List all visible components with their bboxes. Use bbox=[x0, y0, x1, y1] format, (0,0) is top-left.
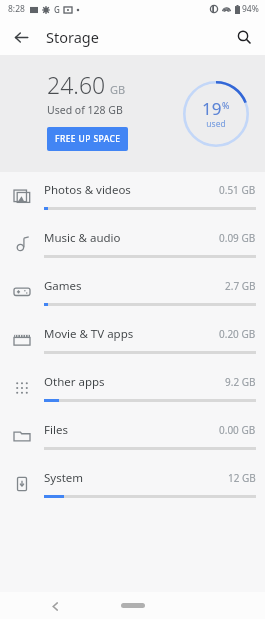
staticText: 12 GB bbox=[228, 471, 256, 485]
button[interactable]: Back bbox=[6, 22, 36, 52]
staticText: used bbox=[206, 118, 226, 130]
staticText: System bbox=[44, 470, 228, 486]
staticText: Movie & TV apps bbox=[44, 326, 219, 342]
staticText: 19 bbox=[202, 97, 222, 120]
button[interactable]: Home bbox=[116, 600, 150, 611]
button[interactable]: Movie & TV apps bbox=[0, 316, 265, 364]
button[interactable]: Photos & videos bbox=[0, 172, 265, 220]
button[interactable]: FREE UP SPACE bbox=[47, 127, 128, 151]
staticText: % bbox=[222, 99, 230, 111]
button[interactable]: Search bbox=[229, 22, 259, 52]
staticText: 2.7 GB bbox=[225, 279, 256, 293]
staticText: 8:28 bbox=[8, 3, 25, 15]
staticText: Files bbox=[44, 422, 219, 438]
staticText: G bbox=[54, 4, 60, 15]
staticText: Games bbox=[44, 278, 225, 294]
staticText: Other apps bbox=[44, 374, 225, 390]
staticText: 0.51 GB bbox=[219, 183, 256, 197]
staticText: Music & audio bbox=[44, 230, 219, 246]
button[interactable]: Games bbox=[0, 268, 265, 316]
staticText: Used of 128 GB bbox=[47, 103, 123, 117]
staticText: 94% bbox=[242, 3, 259, 15]
button[interactable]: Other apps bbox=[0, 364, 265, 412]
staticText: 0.00 GB bbox=[219, 423, 256, 437]
staticText: 0.09 GB bbox=[219, 231, 256, 245]
staticText: 0.20 GB bbox=[219, 327, 256, 341]
staticText: Photos & videos bbox=[44, 182, 219, 198]
button[interactable]: Back bbox=[44, 595, 66, 617]
staticText: FREE UP SPACE bbox=[55, 133, 121, 145]
button[interactable]: Files bbox=[0, 412, 265, 460]
staticText: GB bbox=[110, 82, 126, 97]
staticText: 9.2 GB bbox=[225, 375, 256, 389]
button[interactable]: System bbox=[0, 460, 265, 508]
staticText: 24.60 bbox=[47, 69, 106, 100]
staticText: Storage bbox=[46, 27, 99, 47]
button[interactable]: Music & audio bbox=[0, 220, 265, 268]
